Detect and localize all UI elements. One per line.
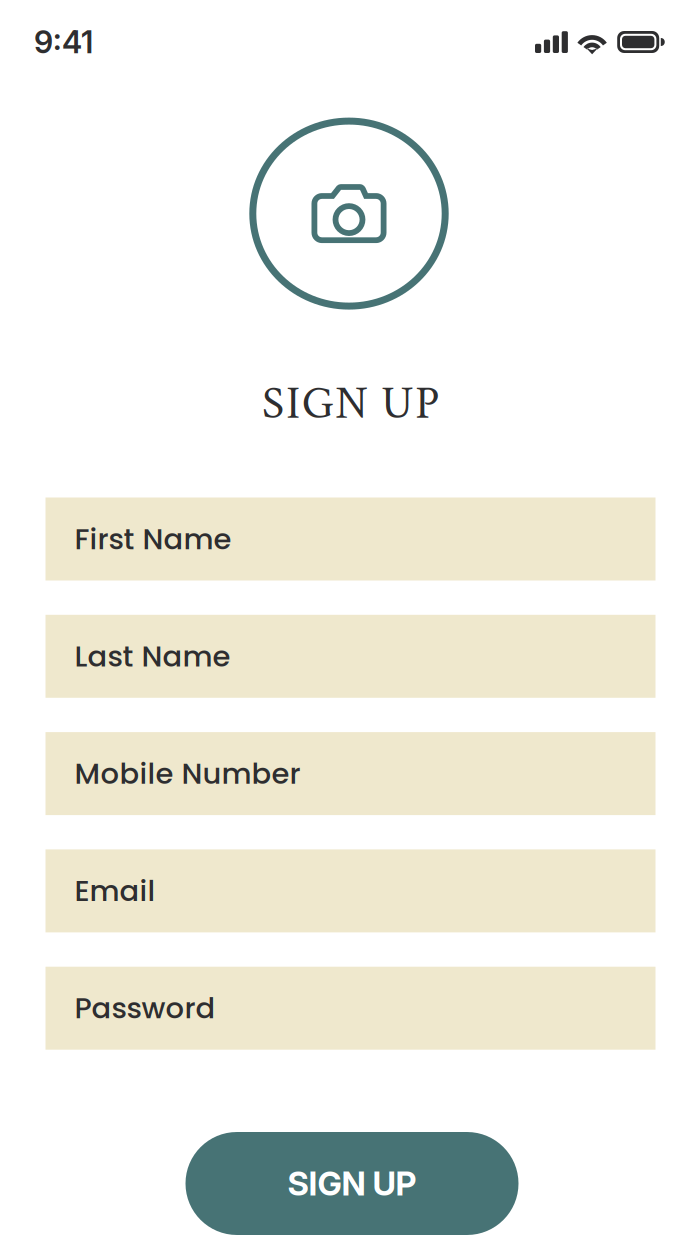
staticText: Mobile Number — [74, 753, 300, 794]
button[interactable]: Add profile photo — [248, 117, 449, 311]
button[interactable]: First Name — [45, 497, 655, 580]
staticText: 9:41 — [34, 23, 93, 60]
button[interactable]: Last Name — [45, 615, 655, 698]
button[interactable]: Password — [45, 967, 655, 1050]
staticText: First Name — [74, 519, 231, 559]
button[interactable]: Email — [45, 849, 655, 932]
staticText: SIGN UP — [262, 374, 439, 434]
staticText: SIGN UP — [287, 1164, 416, 1203]
staticText: Last Name — [74, 636, 230, 677]
staticText: Email — [74, 871, 155, 911]
button[interactable]: Mobile Number — [45, 732, 655, 815]
staticText: Password — [74, 988, 215, 1028]
button[interactable]: SIGN UP — [185, 1132, 518, 1235]
